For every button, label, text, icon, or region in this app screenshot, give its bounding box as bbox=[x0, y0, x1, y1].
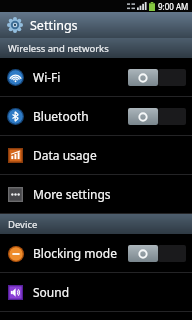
staticText: Device bbox=[8, 218, 38, 231]
staticText: Wireless and networks bbox=[8, 42, 109, 55]
button[interactable]: Data usage bbox=[0, 136, 192, 174]
staticText: Bluetooth bbox=[33, 108, 89, 124]
button[interactable]: Toggle switch, off bbox=[128, 108, 186, 125]
staticText: Data usage bbox=[33, 147, 97, 163]
staticText: Sound bbox=[33, 284, 70, 300]
button[interactable]: Blocking mode bbox=[0, 234, 192, 272]
button[interactable]: Sound bbox=[0, 273, 192, 311]
staticText: Wi-Fi bbox=[33, 69, 61, 85]
staticText: Blocking mode bbox=[33, 245, 117, 261]
button[interactable]: Wi-Fi bbox=[0, 58, 192, 96]
staticText: 9:00 AM bbox=[158, 1, 189, 12]
staticText: Settings bbox=[30, 17, 78, 34]
button[interactable]: Toggle switch, off bbox=[128, 245, 186, 262]
button[interactable]: More settings bbox=[0, 175, 192, 213]
button[interactable]: Toggle switch, off bbox=[128, 69, 186, 86]
staticText: More settings bbox=[33, 186, 111, 202]
button[interactable]: Bluetooth bbox=[0, 97, 192, 135]
